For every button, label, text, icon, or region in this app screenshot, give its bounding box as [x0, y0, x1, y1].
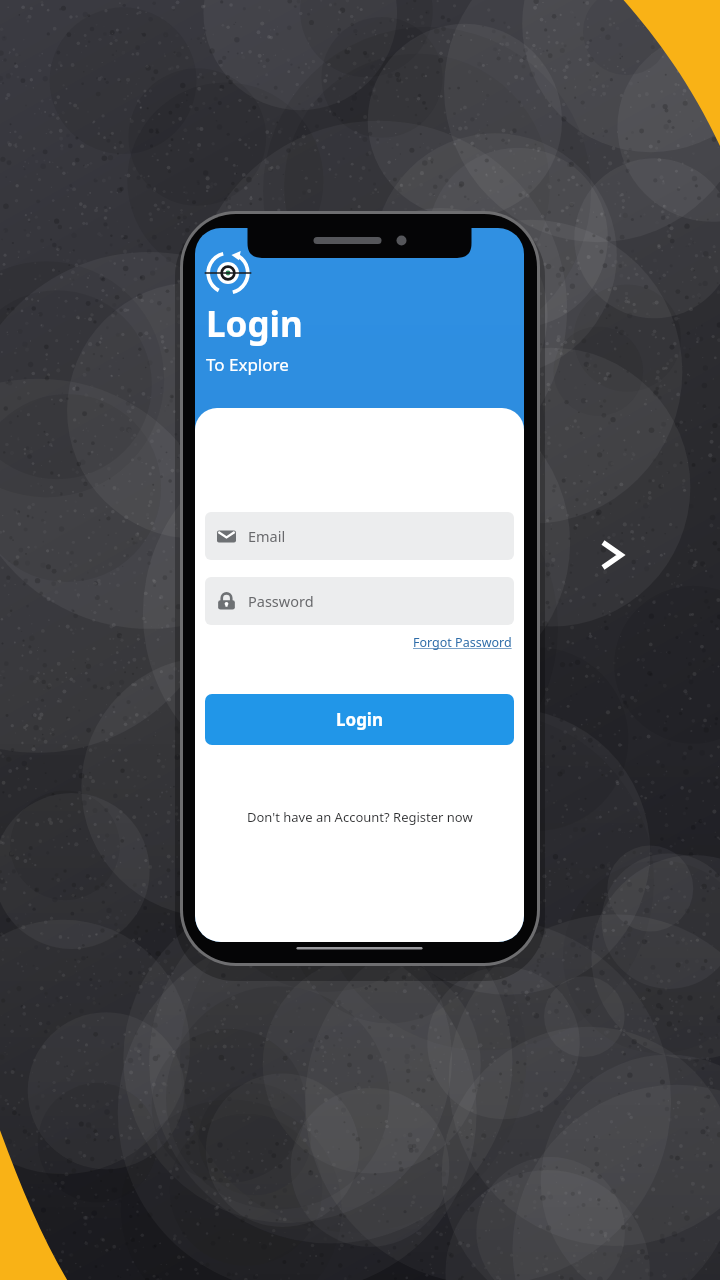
- staticText: Login: [206, 300, 303, 348]
- button[interactable]: Password: [205, 577, 514, 625]
- button[interactable]: Login: [205, 694, 514, 745]
- button[interactable]: Don't have an Account? Register now: [243, 804, 477, 830]
- staticText: Login: [336, 708, 384, 731]
- button[interactable]: Forgot Password: [411, 632, 514, 653]
- staticText: Don't have an Account? Register now: [247, 808, 473, 826]
- button[interactable]: Email: [205, 512, 514, 560]
- staticText: Email: [248, 526, 286, 546]
- staticText: Password: [248, 591, 314, 611]
- staticText: Forgot Password: [413, 634, 512, 651]
- staticText: To Explore: [206, 353, 289, 376]
- button[interactable]: Next: [586, 530, 636, 580]
